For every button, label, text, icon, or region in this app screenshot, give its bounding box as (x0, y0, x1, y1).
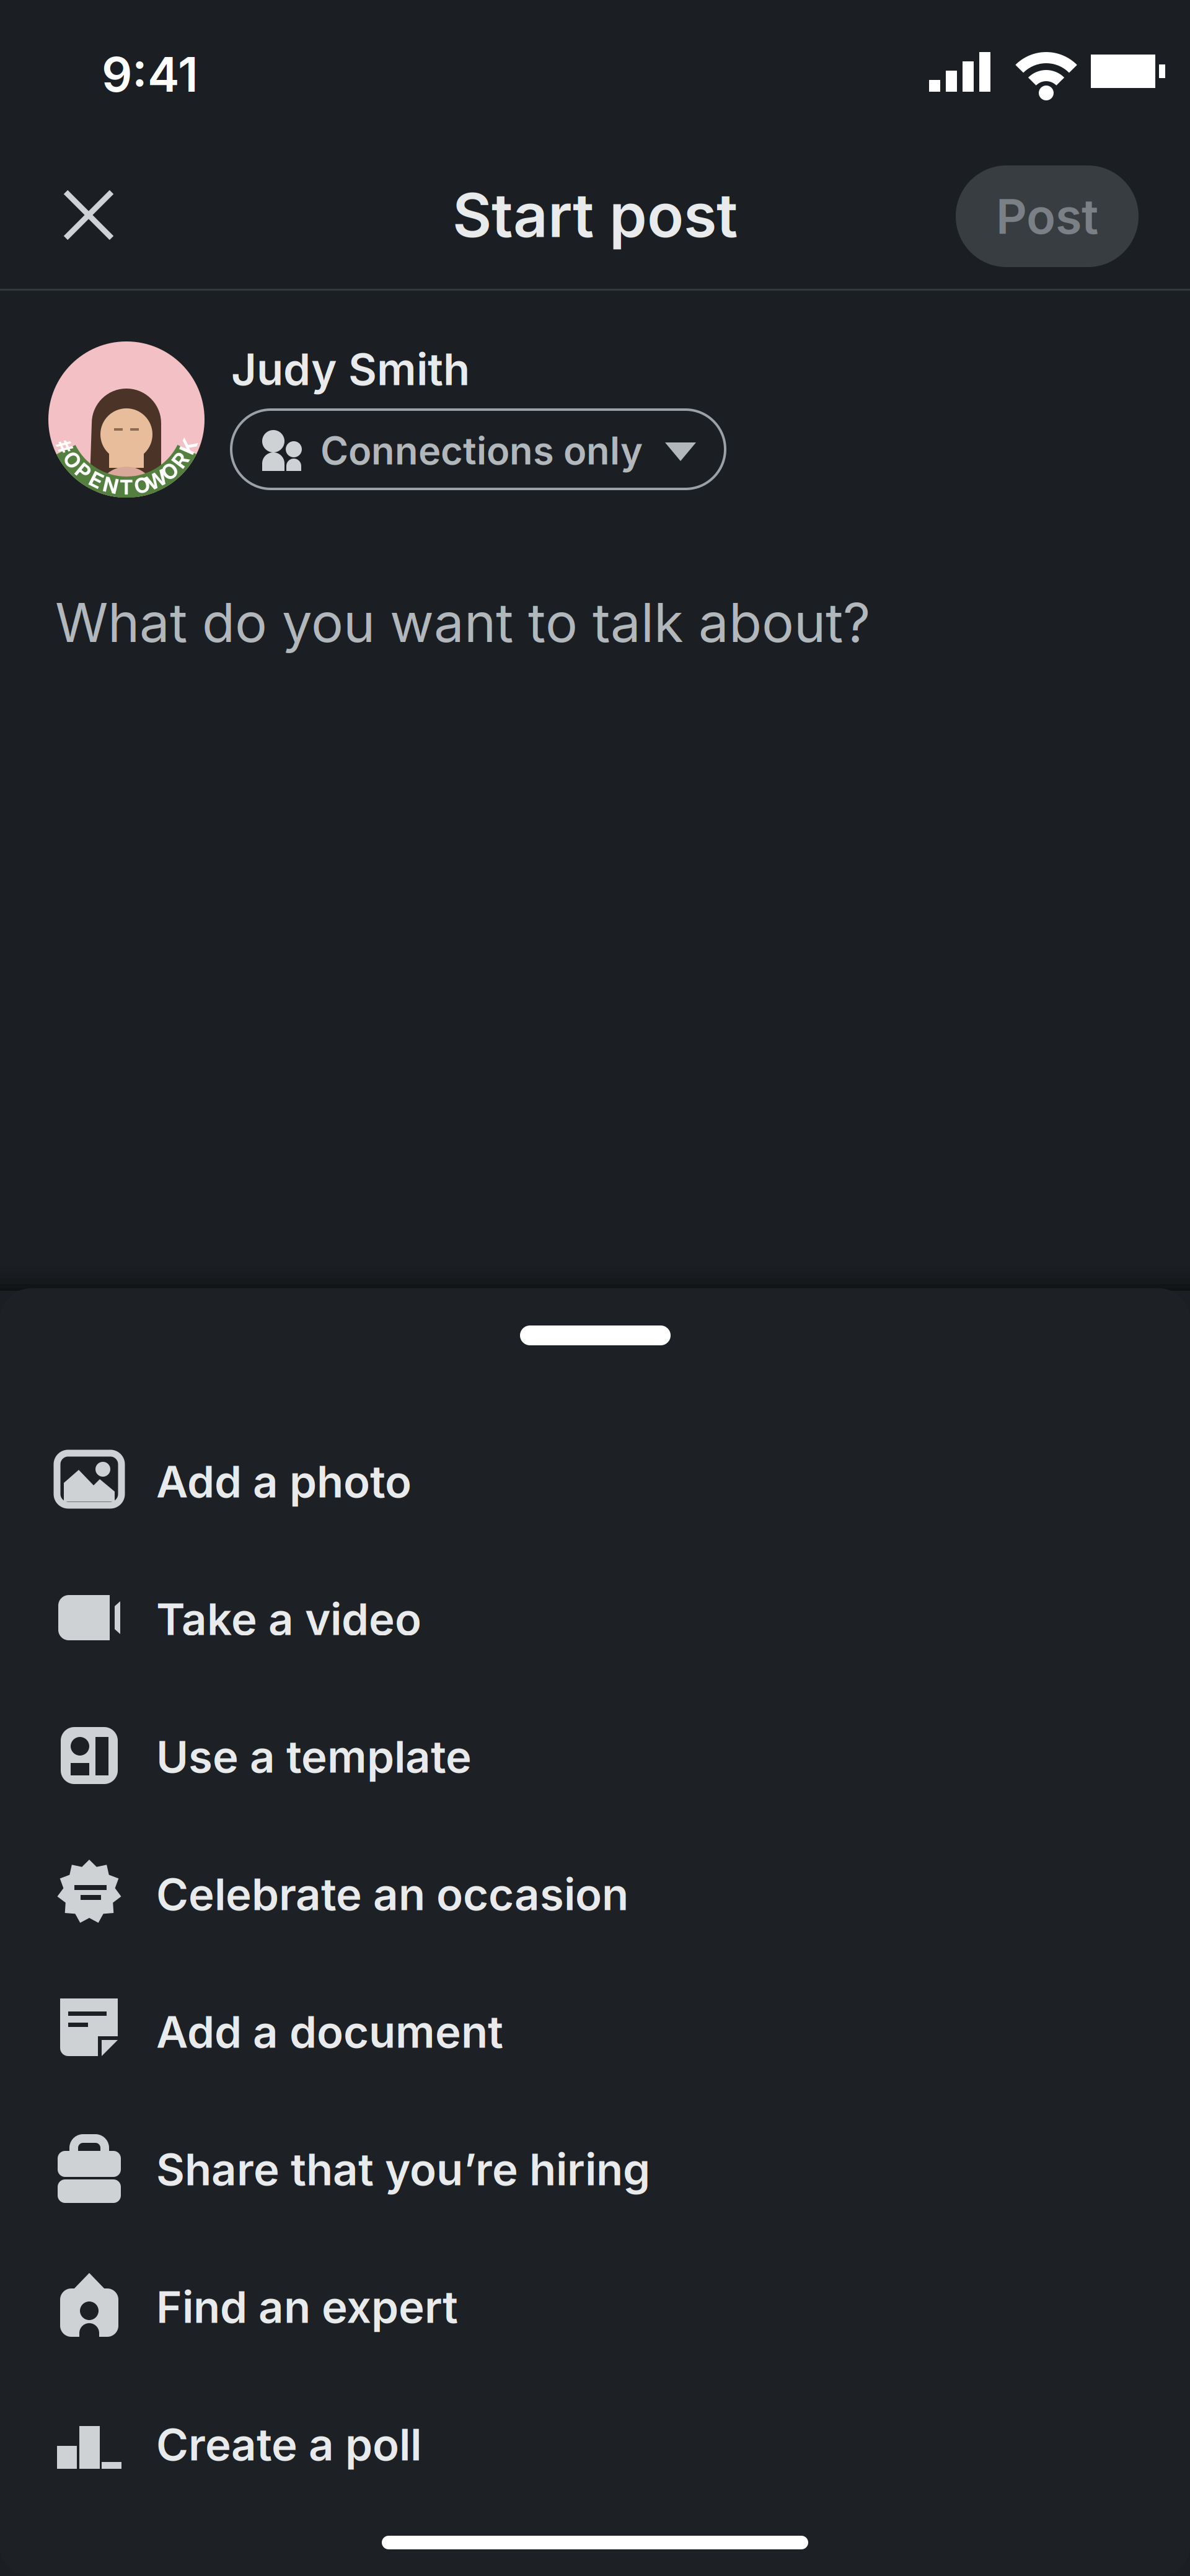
staticText: O (119, 475, 134, 500)
staticText: O (119, 475, 134, 500)
staticText: O (119, 475, 134, 500)
staticText: Find an expert (156, 2280, 458, 2333)
staticText: # (120, 475, 133, 500)
staticText: P (120, 475, 133, 500)
staticText: Create a poll (156, 2418, 421, 2471)
staticText: Start post (452, 179, 738, 252)
staticText: 9:41 (102, 45, 198, 103)
button[interactable]: Add a photo (0, 1410, 1190, 1548)
staticText: T (120, 475, 133, 500)
button[interactable]: Find an expert (0, 2236, 1190, 2373)
button[interactable]: Add a document (0, 1961, 1190, 2098)
button[interactable]: Connections only (231, 410, 725, 489)
button[interactable]: Post (956, 165, 1139, 267)
staticText: Share that you’re hiring (156, 2143, 650, 2196)
staticText: R (120, 475, 133, 500)
staticText: Use a template (156, 1730, 472, 1783)
staticText: Connections only (320, 428, 643, 474)
staticText: Post (996, 187, 1098, 245)
staticText: E (120, 475, 133, 500)
staticText: Add a photo (156, 1455, 412, 1508)
button[interactable]: Take a video (0, 1548, 1190, 1686)
staticText: Add a document (156, 2005, 503, 2058)
staticText: W (116, 475, 137, 500)
button[interactable]: Close (56, 183, 121, 247)
staticText: N (119, 475, 134, 500)
staticText: What do you want to talk about? (55, 590, 870, 655)
button[interactable]: Use a template (0, 1686, 1190, 1823)
staticText: Judy Smith (231, 343, 470, 396)
staticText: Take a video (156, 1593, 421, 1646)
button[interactable]: Create a poll (0, 2373, 1190, 2511)
staticText: Celebrate an occasion (156, 1868, 628, 1921)
button[interactable]: Celebrate an occasion (0, 1823, 1190, 1961)
staticText: K (119, 475, 134, 500)
button[interactable]: Share that you’re hiring (0, 2098, 1190, 2236)
